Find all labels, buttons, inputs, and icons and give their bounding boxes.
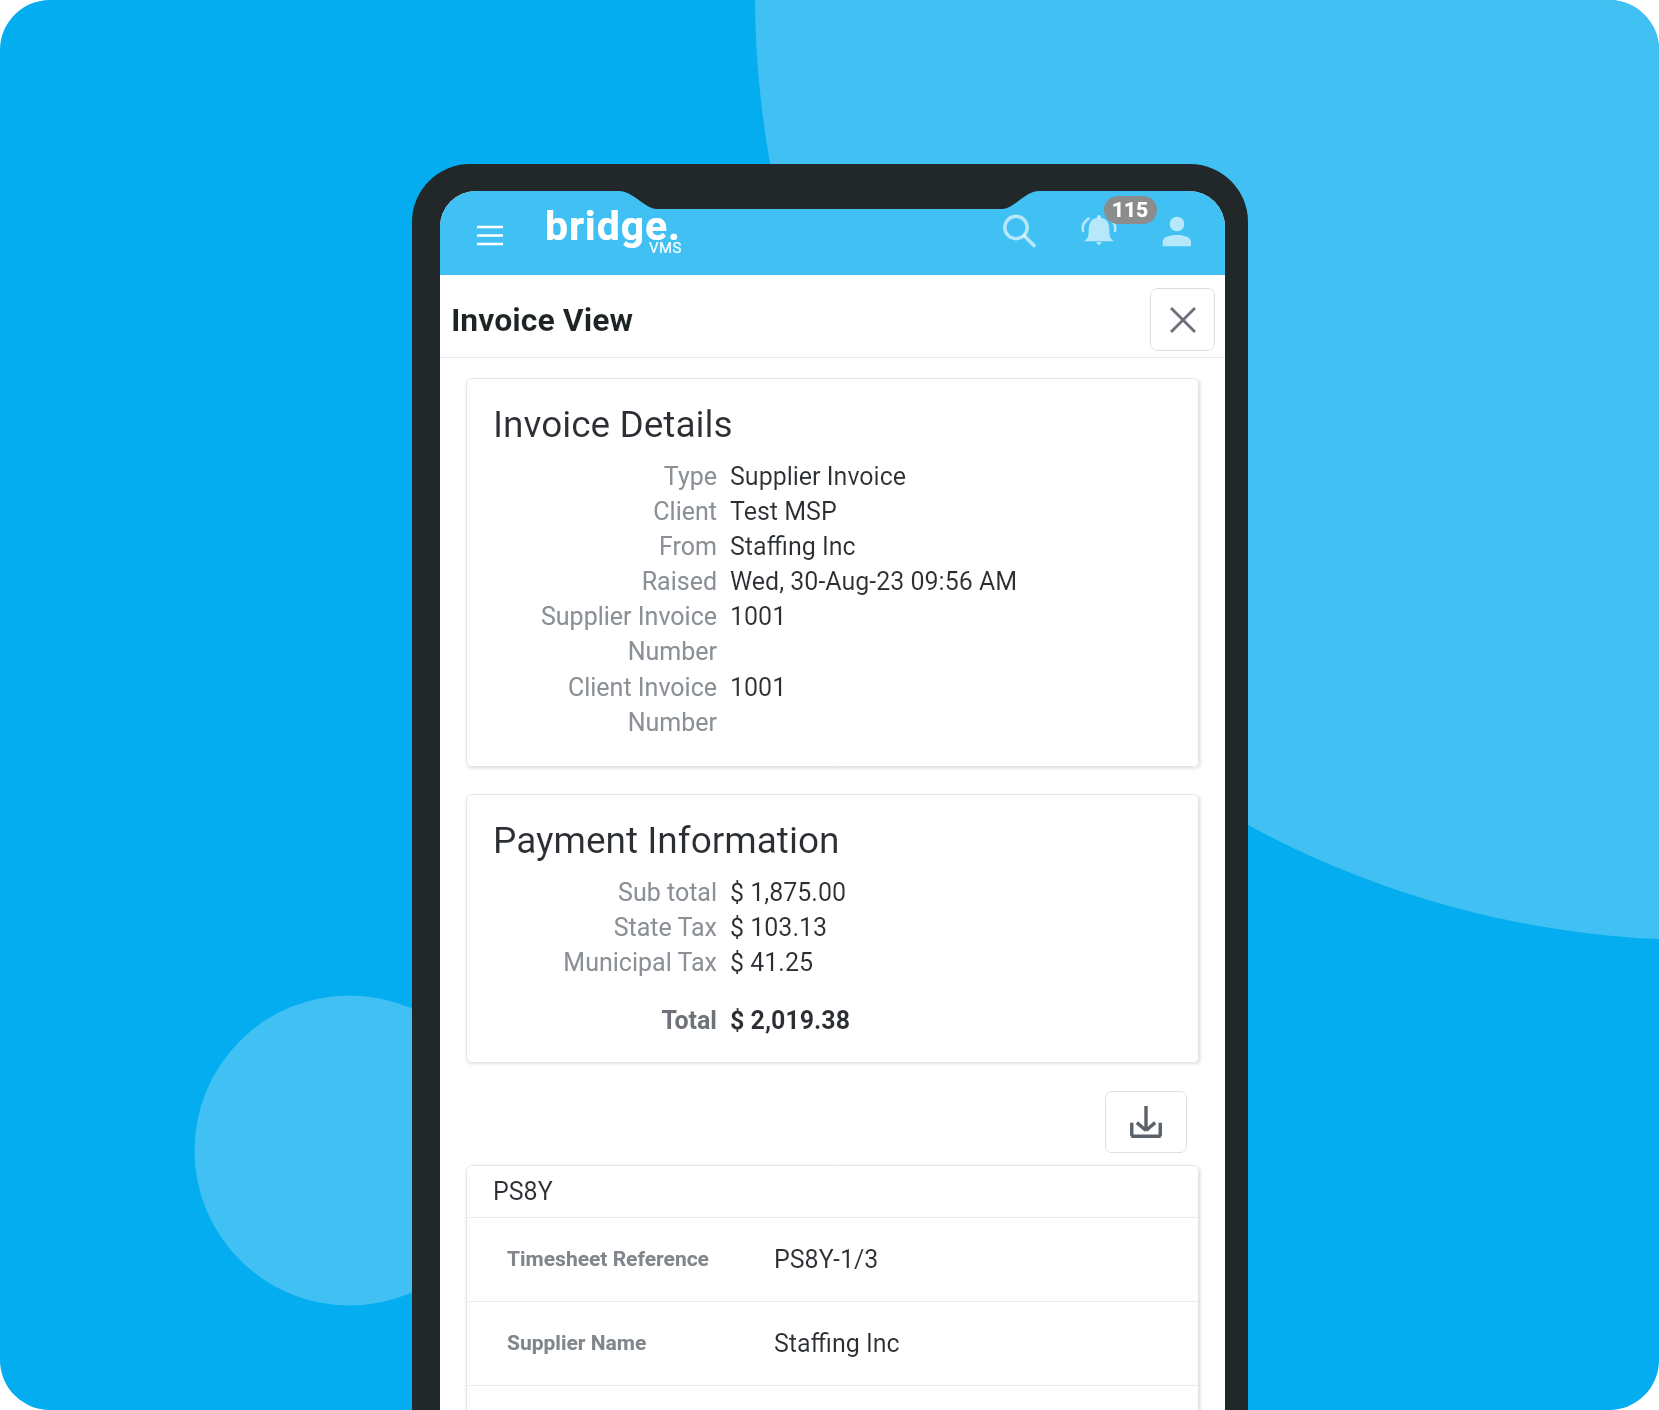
staticText: bridge. [545,202,681,250]
button[interactable]: Timesheet Reference [466,1218,1199,1301]
staticText: Client [493,492,717,527]
staticText: Supplier Invoice [730,457,907,492]
staticText: VMS [649,239,682,257]
staticText: Timesheet Reference [507,1247,709,1272]
button[interactable]: Menu [452,209,528,261]
staticText: Client Invoice Number [493,668,717,738]
staticText: Supplier Name [507,1331,647,1356]
staticText: Test MSP [730,492,837,527]
staticText: Invoice View [451,301,633,339]
staticText: 115 [1112,198,1149,223]
staticText: From [493,527,717,562]
staticText: Supplier Invoice Number [493,597,717,667]
staticText: Payment Information [493,819,840,862]
staticText: Municipal Tax [493,943,717,978]
staticText: Staffing Inc [730,527,856,562]
staticText: $ 1,875.00 [730,873,847,908]
staticText: 1001 [730,597,787,632]
button[interactable]: Supplier Name [466,1302,1199,1385]
staticText: $ 41.25 [730,943,814,978]
button[interactable]: Close [1150,288,1215,351]
staticText: Sub total [493,873,717,908]
staticText: Invoice Details [493,403,733,446]
staticText: PS8Y-1/3 [774,1245,879,1274]
staticText: 1001 [730,668,787,703]
staticText: PS8Y [493,1177,553,1206]
staticText: Raised [493,562,717,597]
button[interactable]: Notifications [1069,200,1129,260]
button[interactable]: Search [991,203,1051,263]
staticText: Wed, 30-Aug-23 09:56 AM [730,562,1018,597]
staticText: Staffing Inc [774,1329,900,1358]
staticText: State Tax [493,908,717,943]
staticText: $ 2,019.38 [730,1001,851,1036]
button[interactable]: Download [1105,1091,1187,1153]
button[interactable]: Profile [1147,200,1207,260]
staticText: Total [493,1001,717,1036]
staticText: $ 103.13 [730,908,828,943]
staticText: Type [493,457,717,492]
